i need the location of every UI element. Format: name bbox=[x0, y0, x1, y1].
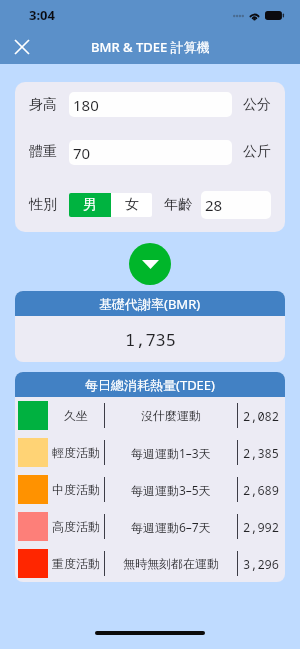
button[interactable]: Close bbox=[6, 31, 38, 63]
staticText: 每週運動3–5天 bbox=[131, 482, 211, 498]
staticText: 2,992 bbox=[243, 519, 280, 535]
staticText: 性別 bbox=[29, 196, 57, 214]
button[interactable]: 男 bbox=[69, 193, 111, 217]
button[interactable]: 70 bbox=[69, 140, 232, 165]
button[interactable]: Calculate bbox=[129, 243, 171, 285]
staticText: 28 bbox=[205, 195, 223, 215]
staticText: 高度活動 bbox=[52, 519, 100, 534]
staticText: 沒什麼運動 bbox=[141, 408, 201, 423]
button[interactable]: 久坐 bbox=[15, 397, 285, 434]
staticText: 輕度活動 bbox=[52, 445, 100, 460]
staticText: 身高 bbox=[29, 96, 57, 114]
button[interactable]: 高度活動 bbox=[15, 508, 285, 545]
staticText: 每日總消耗熱量(TDEE) bbox=[85, 376, 215, 394]
staticText: 2,689 bbox=[243, 482, 280, 498]
staticText: 重度活動 bbox=[52, 556, 100, 571]
staticText: 體重 bbox=[29, 143, 57, 161]
staticText: 無時無刻都在運動 bbox=[123, 556, 219, 571]
button[interactable]: 輕度活動 bbox=[15, 434, 285, 471]
staticText: 180 bbox=[73, 95, 99, 115]
staticText: 公斤 bbox=[243, 143, 271, 161]
staticText: 每週運動6–7天 bbox=[131, 519, 211, 535]
staticText: BMR & TDEE 計算機 bbox=[91, 38, 210, 56]
staticText: 2,082 bbox=[243, 408, 280, 424]
staticText: 女 bbox=[125, 196, 139, 214]
button[interactable]: 中度活動 bbox=[15, 471, 285, 508]
staticText: 70 bbox=[73, 143, 91, 163]
staticText: 每週運動1–3天 bbox=[131, 445, 211, 461]
staticText: 1,735 bbox=[125, 328, 176, 351]
staticText: 中度活動 bbox=[52, 482, 100, 497]
button[interactable]: 女 bbox=[111, 193, 152, 217]
button[interactable]: 180 bbox=[69, 92, 232, 117]
staticText: 年齡 bbox=[164, 196, 192, 214]
staticText: 3:04 bbox=[29, 6, 55, 24]
staticText: 2,385 bbox=[243, 445, 280, 461]
staticText: 3,296 bbox=[243, 556, 280, 572]
button[interactable]: 重度活動 bbox=[15, 545, 285, 582]
button[interactable]: 28 bbox=[201, 191, 271, 219]
staticText: 久坐 bbox=[64, 408, 88, 423]
staticText: 基礎代謝率(BMR) bbox=[99, 295, 201, 313]
staticText: 公分 bbox=[243, 96, 271, 114]
staticText: 男 bbox=[83, 196, 97, 214]
